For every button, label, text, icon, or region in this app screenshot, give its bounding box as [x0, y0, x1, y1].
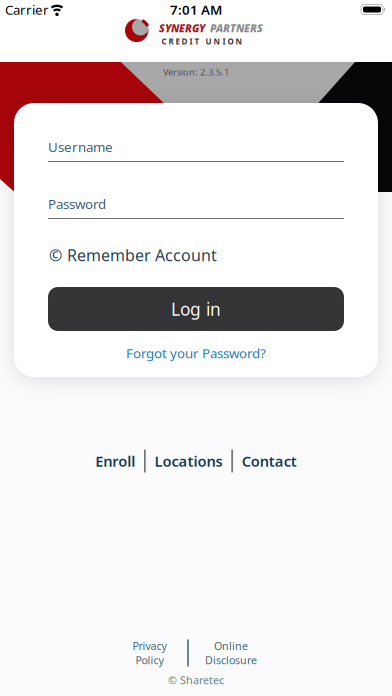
staticText: C R E D I T U N I O N [161, 36, 242, 47]
staticText: Disclosure [205, 653, 257, 667]
button[interactable]: Contact [242, 451, 297, 471]
staticText: © Sharetec [168, 673, 224, 687]
button[interactable]: Log in [48, 287, 344, 331]
staticText: Policy [135, 653, 163, 667]
button[interactable]: Privacy [132, 639, 166, 667]
staticText: Forgot your Password? [126, 344, 266, 362]
staticText: Username [48, 138, 113, 156]
button[interactable]: © [49, 244, 345, 266]
staticText: 7:01 AM [170, 1, 222, 18]
staticText: Contact [242, 451, 297, 471]
button[interactable]: Online [205, 639, 257, 667]
staticText: Version: 2.3.5.1 [163, 66, 229, 78]
staticText: Online [214, 639, 248, 653]
staticText: Log in [171, 297, 221, 320]
button[interactable]: Locations [154, 451, 222, 471]
staticText: Locations [154, 451, 222, 471]
button[interactable]: Forgot your Password? [126, 344, 266, 362]
staticText: Carrier [5, 1, 49, 18]
button[interactable]: Enroll [95, 451, 135, 471]
staticText: © [49, 244, 62, 266]
staticText: Password [48, 195, 106, 213]
staticText: PARTNERS [210, 21, 263, 35]
staticText: Enroll [95, 451, 135, 471]
staticText: Remember Account [67, 244, 217, 266]
button[interactable]: Password [48, 195, 344, 219]
button[interactable]: Username [48, 138, 344, 162]
staticText: SYNERGY [159, 21, 205, 35]
staticText: Privacy [132, 639, 166, 653]
